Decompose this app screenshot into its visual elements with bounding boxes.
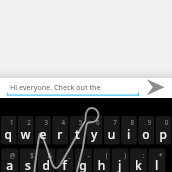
button[interactable] — [56, 148, 74, 172]
button[interactable] — [17, 116, 34, 145]
button[interactable] — [148, 148, 166, 172]
button[interactable] — [0, 116, 17, 145]
button[interactable] — [130, 148, 148, 172]
button[interactable] — [1, 148, 19, 172]
button[interactable] — [93, 148, 111, 172]
button[interactable] — [138, 116, 155, 145]
button[interactable] — [86, 116, 103, 145]
button[interactable] — [38, 148, 56, 172]
button[interactable] — [34, 116, 51, 145]
button[interactable] — [69, 116, 86, 145]
button[interactable] — [20, 148, 38, 172]
button[interactable] — [112, 148, 130, 172]
button[interactable] — [120, 116, 137, 145]
button[interactable] — [75, 148, 93, 172]
button[interactable] — [144, 77, 168, 97]
button[interactable] — [52, 116, 69, 145]
button[interactable] — [103, 116, 120, 145]
button[interactable] — [155, 116, 172, 145]
